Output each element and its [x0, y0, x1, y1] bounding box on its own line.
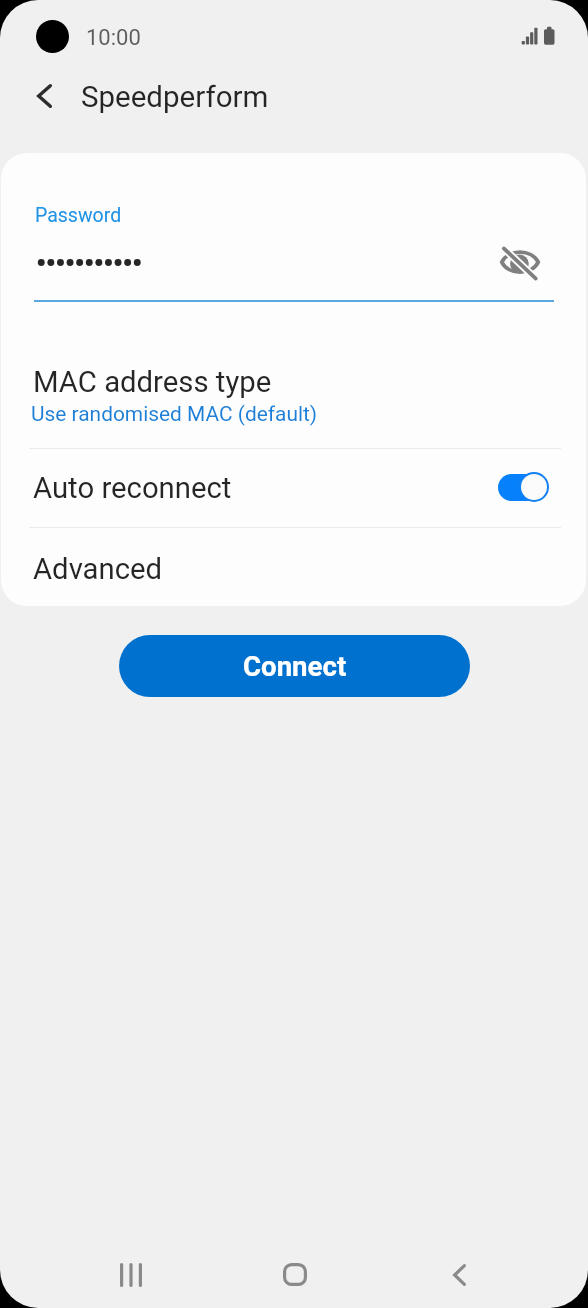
staticText: Connect — [243, 650, 347, 682]
button[interactable]: Advanced — [1, 528, 586, 606]
button[interactable]: Connect — [119, 635, 470, 697]
staticText: MAC address type — [33, 365, 272, 399]
staticText: Auto reconnect — [33, 471, 498, 505]
button[interactable]: Back — [427, 1242, 492, 1307]
staticText: Password — [35, 204, 122, 227]
button[interactable]: Back — [18, 69, 71, 122]
button[interactable]: Recent apps — [98, 1242, 163, 1307]
staticText: Speedperform — [81, 80, 269, 115]
button[interactable]: Auto reconnect — [1, 449, 586, 527]
staticText: 10:00 — [86, 25, 141, 51]
staticText: Advanced — [33, 552, 163, 586]
button[interactable]: MAC address type — [1, 353, 586, 448]
button[interactable]: Home — [262, 1242, 327, 1307]
staticText: Use randomised MAC (default) — [31, 402, 318, 426]
button[interactable]: Show password — [495, 238, 545, 288]
